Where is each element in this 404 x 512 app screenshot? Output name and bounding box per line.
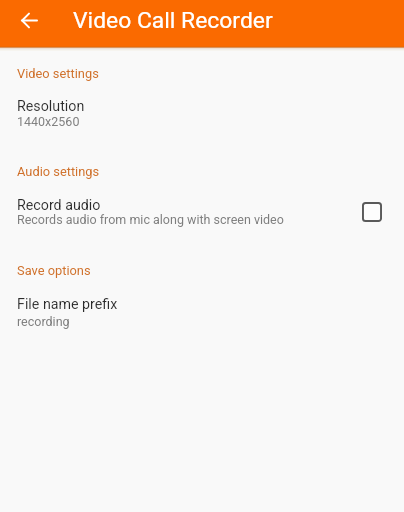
button[interactable]: Resolution xyxy=(0,86,404,132)
staticText: Record audio xyxy=(17,197,101,214)
staticText: 1440x2560 xyxy=(17,114,80,129)
button[interactable]: Toggle Record audio xyxy=(362,202,382,222)
button[interactable]: Record audio xyxy=(0,185,404,231)
staticText: Audio settings xyxy=(17,164,100,179)
staticText: Save options xyxy=(17,263,91,278)
staticText: File name prefix xyxy=(17,296,118,313)
staticText: Video settings xyxy=(17,66,99,81)
staticText: recording xyxy=(17,314,70,329)
button[interactable]: Navigate back xyxy=(8,0,50,41)
staticText: Records audio from mic along with screen… xyxy=(17,212,284,227)
staticText: Resolution xyxy=(17,98,85,115)
staticText: Video Call Recorder xyxy=(73,7,273,34)
button[interactable]: File name prefix xyxy=(0,284,404,330)
